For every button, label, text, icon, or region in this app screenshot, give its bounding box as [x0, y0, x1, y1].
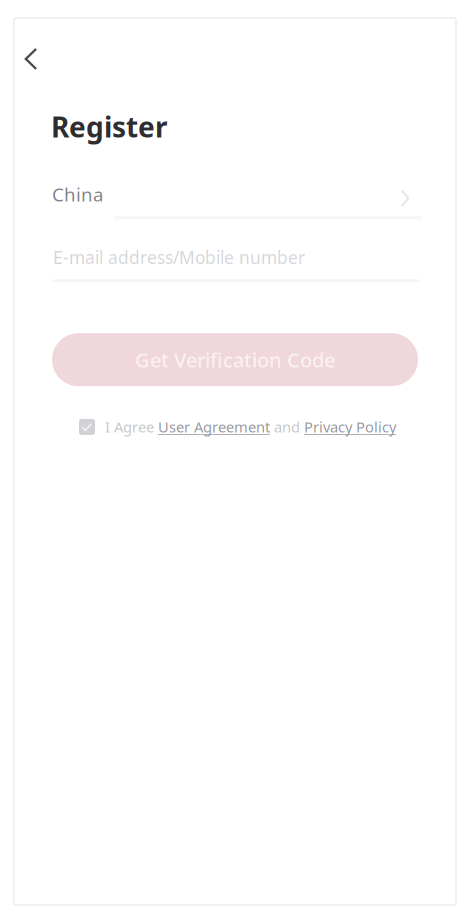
staticText: E-mail address/Mobile number [53, 246, 305, 269]
button[interactable]: User Agreement [158, 417, 270, 437]
button[interactable]: I Agree [74, 417, 396, 437]
staticText: Privacy Policy [304, 417, 396, 437]
button[interactable]: Privacy Policy [304, 417, 396, 437]
button[interactable]: Get Verification Code [52, 333, 418, 386]
staticText: and [270, 417, 304, 437]
staticText: China [52, 182, 103, 207]
staticText: Register [51, 108, 168, 145]
staticText: I Agree [105, 417, 158, 437]
button[interactable]: China [14, 145, 456, 219]
button[interactable]: Back [14, 39, 50, 79]
staticText: Get Verification Code [135, 346, 335, 373]
staticText: User Agreement [158, 417, 270, 437]
